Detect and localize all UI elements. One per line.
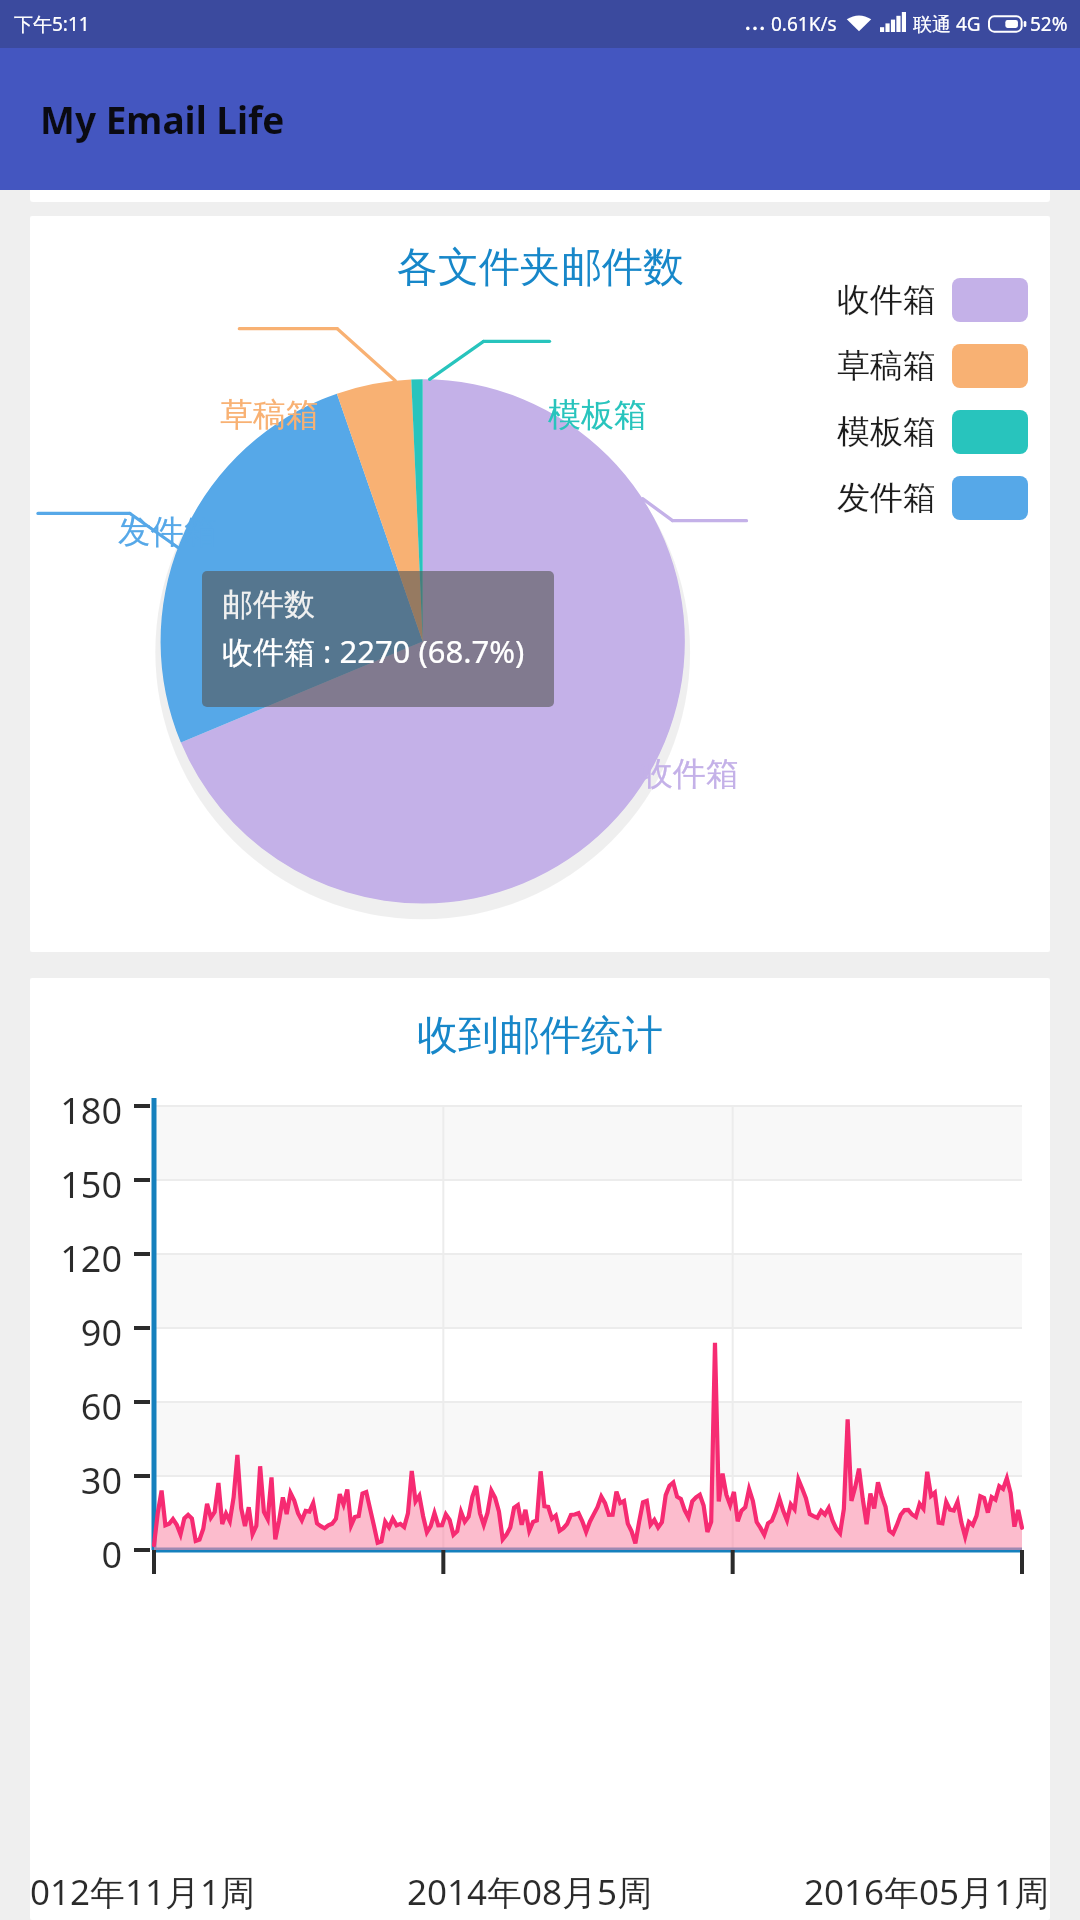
staticText: 下午5:11 bbox=[14, 11, 90, 37]
other: Signal bbox=[880, 14, 906, 34]
staticText: 邮件数 bbox=[222, 585, 315, 624]
staticText: 联通 4G bbox=[913, 11, 981, 37]
staticText: My Email Life bbox=[40, 94, 285, 144]
staticText: 模板箱 bbox=[548, 394, 647, 436]
staticText: 0 bbox=[30, 1530, 122, 1579]
other: Battery 52 percent bbox=[988, 13, 1026, 35]
staticText: 收到邮件统计 bbox=[417, 1010, 663, 1062]
button[interactable]: 收件箱 bbox=[837, 278, 1028, 322]
other: Wi-Fi bbox=[846, 14, 872, 34]
staticText: 120 bbox=[30, 1234, 122, 1283]
staticText: 草稿箱 bbox=[220, 394, 319, 436]
staticText: 各文件夹邮件数 bbox=[397, 242, 684, 294]
staticText: 90 bbox=[30, 1308, 122, 1357]
button[interactable]: 模板箱 bbox=[837, 410, 1028, 454]
button[interactable]: 草稿箱 bbox=[837, 344, 1028, 388]
staticText: 150 bbox=[30, 1160, 122, 1209]
staticText: 180 bbox=[30, 1086, 122, 1135]
button[interactable]: 收到邮件统计 bbox=[30, 978, 1050, 1920]
staticText: 52% bbox=[1030, 11, 1068, 37]
staticText: 收件箱 : 2270 (68.7%) bbox=[222, 630, 525, 672]
staticText: 30 bbox=[30, 1456, 122, 1505]
staticText: 模板箱 bbox=[837, 411, 936, 453]
staticText: 60 bbox=[30, 1382, 122, 1431]
button[interactable]: 发件箱 bbox=[837, 476, 1028, 520]
staticText: 012年11月1周 bbox=[30, 1868, 256, 1916]
button[interactable]: My Email Life bbox=[0, 48, 1080, 190]
staticText: 收件箱 bbox=[837, 279, 936, 321]
other: More bbox=[743, 14, 767, 34]
staticText: 发件箱 bbox=[118, 511, 217, 553]
staticText: 发件箱 bbox=[837, 477, 936, 519]
staticText: 收件箱 bbox=[640, 753, 739, 795]
staticText: 0.61K/s bbox=[771, 11, 837, 37]
staticText: 2014年08月5周 bbox=[407, 1868, 653, 1916]
staticText: 2016年05月1周 bbox=[804, 1868, 1050, 1916]
button[interactable]: 各文件夹邮件数 bbox=[30, 216, 1050, 952]
staticText: 草稿箱 bbox=[837, 345, 936, 387]
